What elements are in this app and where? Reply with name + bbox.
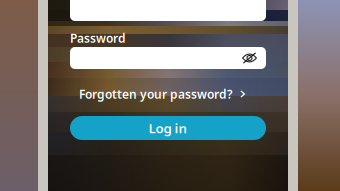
staticText: Password (70, 30, 126, 46)
button[interactable]: Log in (70, 116, 266, 140)
button[interactable]: Show password (242, 51, 257, 64)
staticText: Log in (148, 119, 187, 137)
staticText: Forgotten your password? (79, 86, 233, 102)
button[interactable]: Forgotten your password? (79, 86, 245, 102)
